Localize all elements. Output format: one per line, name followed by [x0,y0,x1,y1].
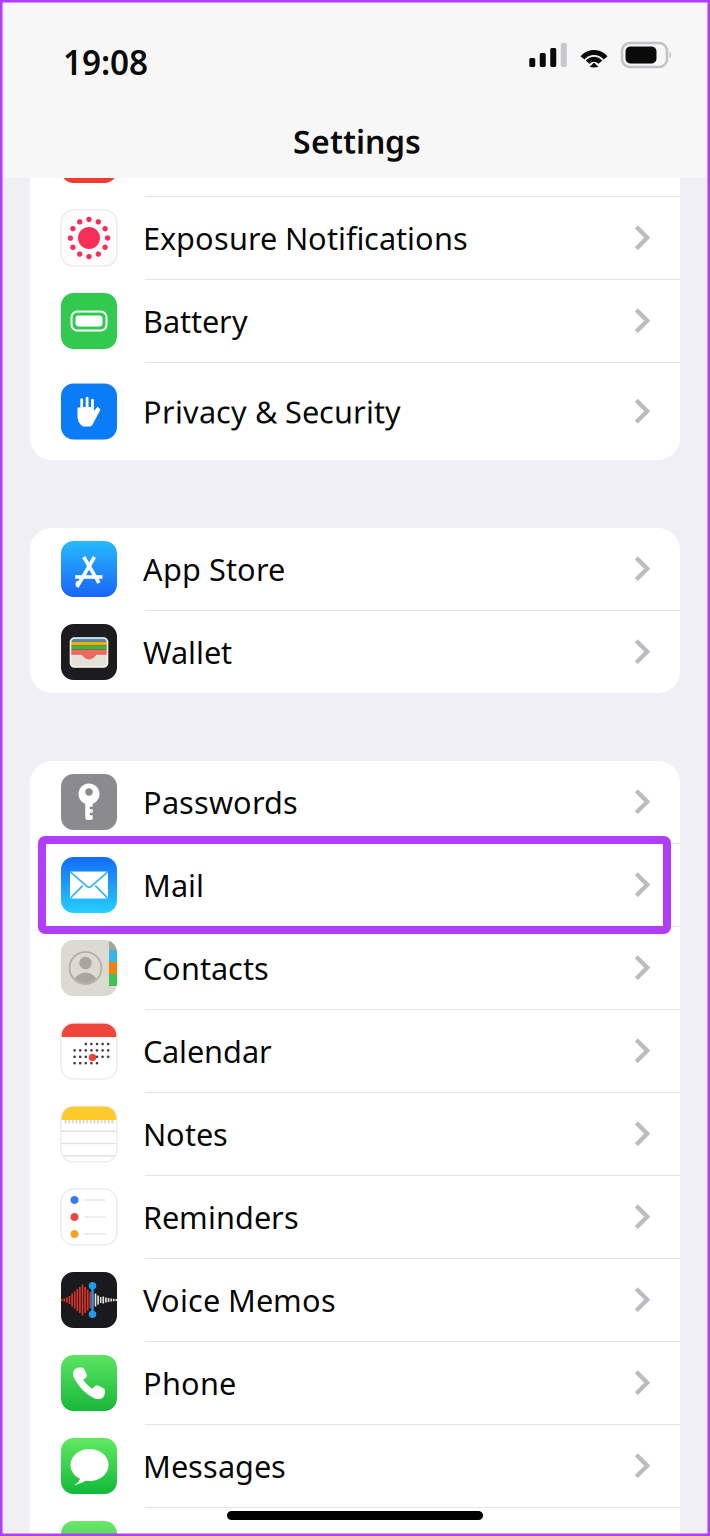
button[interactable]: Voice Memos [30,1259,680,1341]
button[interactable]: Exposure Notifications [30,197,680,279]
button[interactable]: Wallet [30,611,680,693]
staticText: Notes [143,1114,228,1154]
button[interactable]: Notes [30,1093,680,1175]
staticText: Exposure Notifications [143,218,468,258]
button[interactable]: Reminders [30,1176,680,1258]
staticText: Reminders [143,1197,299,1237]
staticText: Voice Memos [143,1280,336,1320]
staticText: Messages [143,1446,286,1486]
staticText: App Store [143,549,285,589]
button[interactable]: FaceTime [30,1508,680,1536]
staticText: Phone [143,1363,236,1403]
staticText: Calendar [143,1031,272,1071]
staticText: Battery [143,301,248,341]
button[interactable]: App Store [30,528,680,610]
staticText: 19:08 [63,40,148,84]
staticText: Passwords [143,782,298,822]
staticText: Mail [143,865,204,905]
button[interactable]: Phone [30,1342,680,1424]
staticText: Settings [293,120,421,162]
button[interactable]: Battery [30,280,680,362]
staticText: Emergency SOS [143,135,370,175]
staticText: Privacy & Security [143,391,401,432]
button[interactable]: Contacts [30,927,680,1009]
button[interactable]: Mail [30,844,680,926]
staticText: FaceTime [143,1529,279,1536]
button[interactable]: Calendar [30,1010,680,1092]
button[interactable]: Privacy & Security [30,363,680,460]
button[interactable]: Messages [30,1425,680,1507]
staticText: Wallet [143,632,232,672]
button[interactable]: Passwords [30,761,680,843]
staticText: Contacts [143,948,269,988]
button[interactable]: Emergency SOS [30,114,680,196]
